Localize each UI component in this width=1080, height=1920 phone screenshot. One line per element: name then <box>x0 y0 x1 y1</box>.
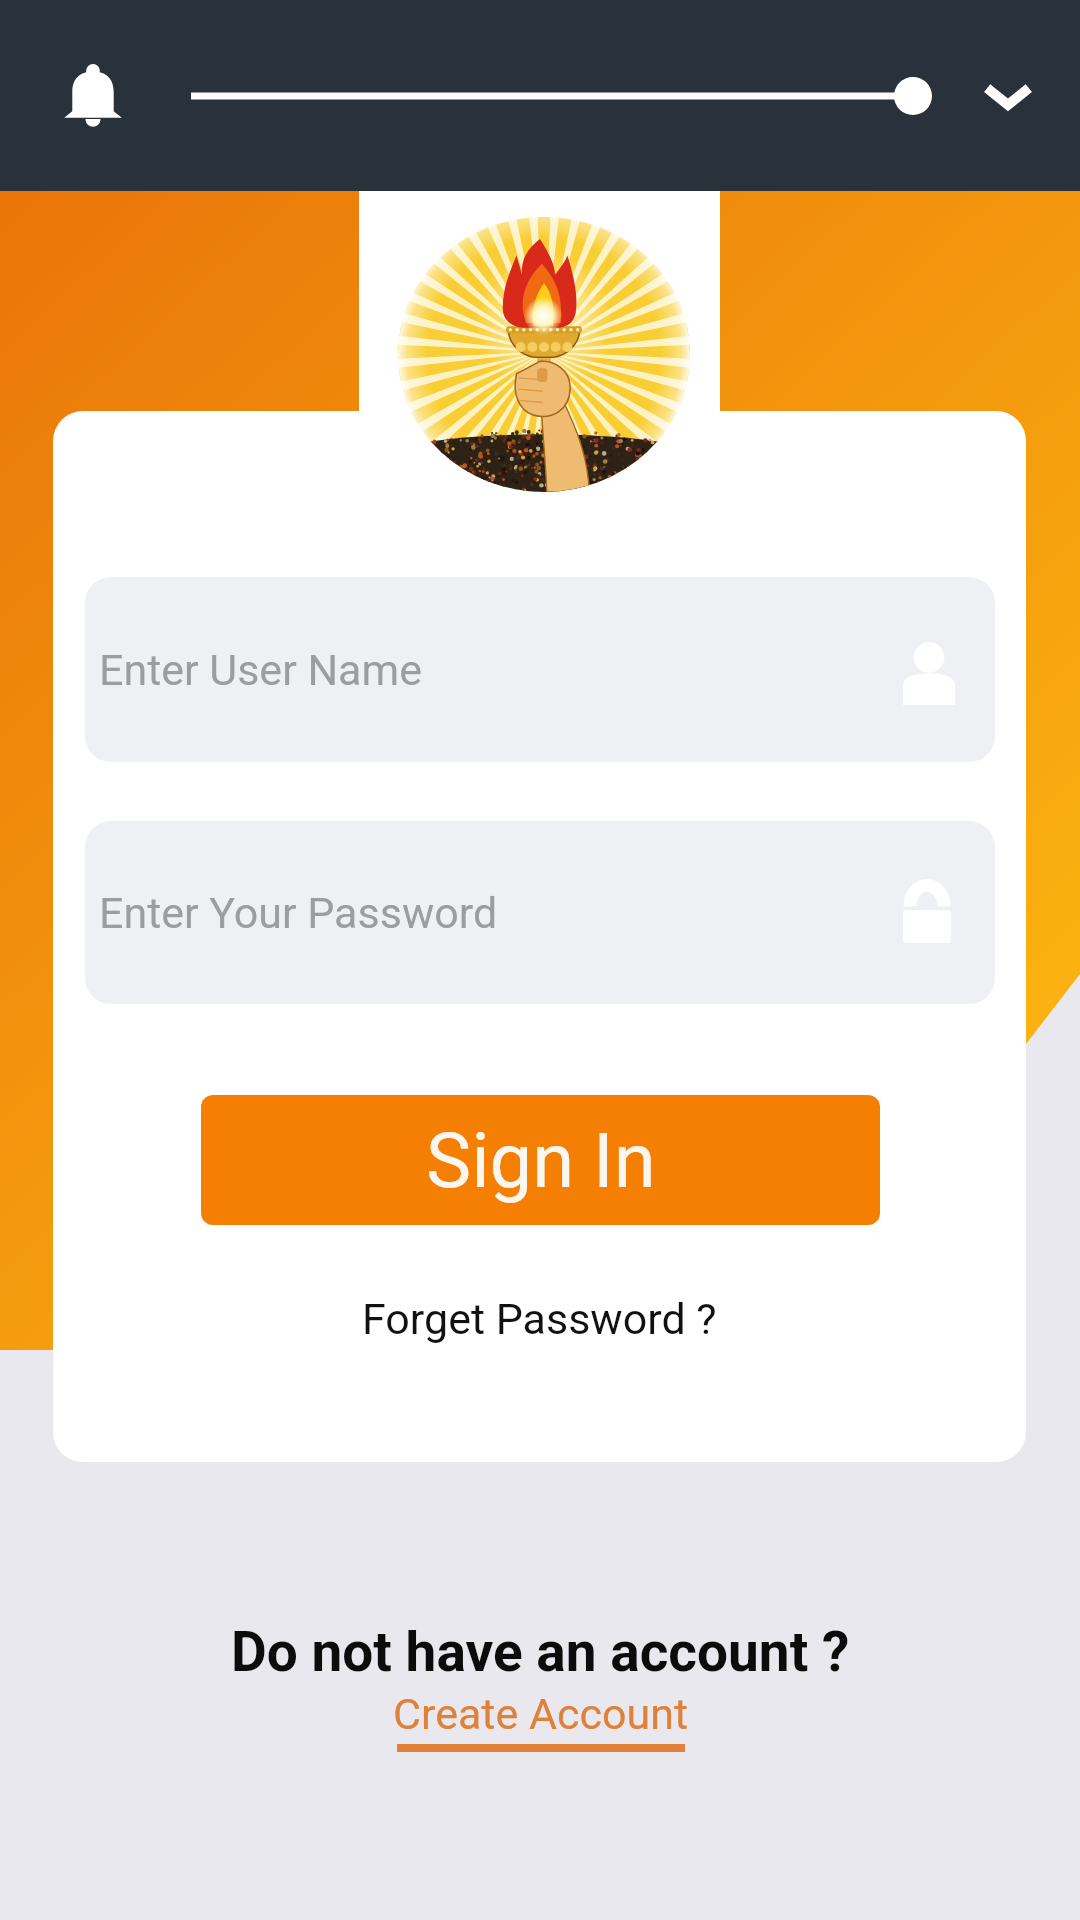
staticText: Forget Password ? <box>362 1294 717 1344</box>
button[interactable]: Create Account <box>393 1689 688 1752</box>
button[interactable]: Enter Your Password <box>85 821 995 1004</box>
staticText: Enter Your Password <box>99 888 498 938</box>
button[interactable]: Forget Password ? <box>338 1268 741 1370</box>
button[interactable]: Enter User Name <box>85 577 995 762</box>
staticText: Enter User Name <box>99 645 422 695</box>
button[interactable]: Brightness slider <box>170 46 954 146</box>
button[interactable]: Notifications <box>45 47 141 143</box>
button[interactable]: Collapse <box>960 50 1056 146</box>
staticText: Sign In <box>426 1116 656 1205</box>
staticText: Create Account <box>393 1689 688 1739</box>
staticText: Do not have an account ? <box>231 1620 850 1684</box>
button[interactable]: Sign In <box>201 1095 880 1225</box>
